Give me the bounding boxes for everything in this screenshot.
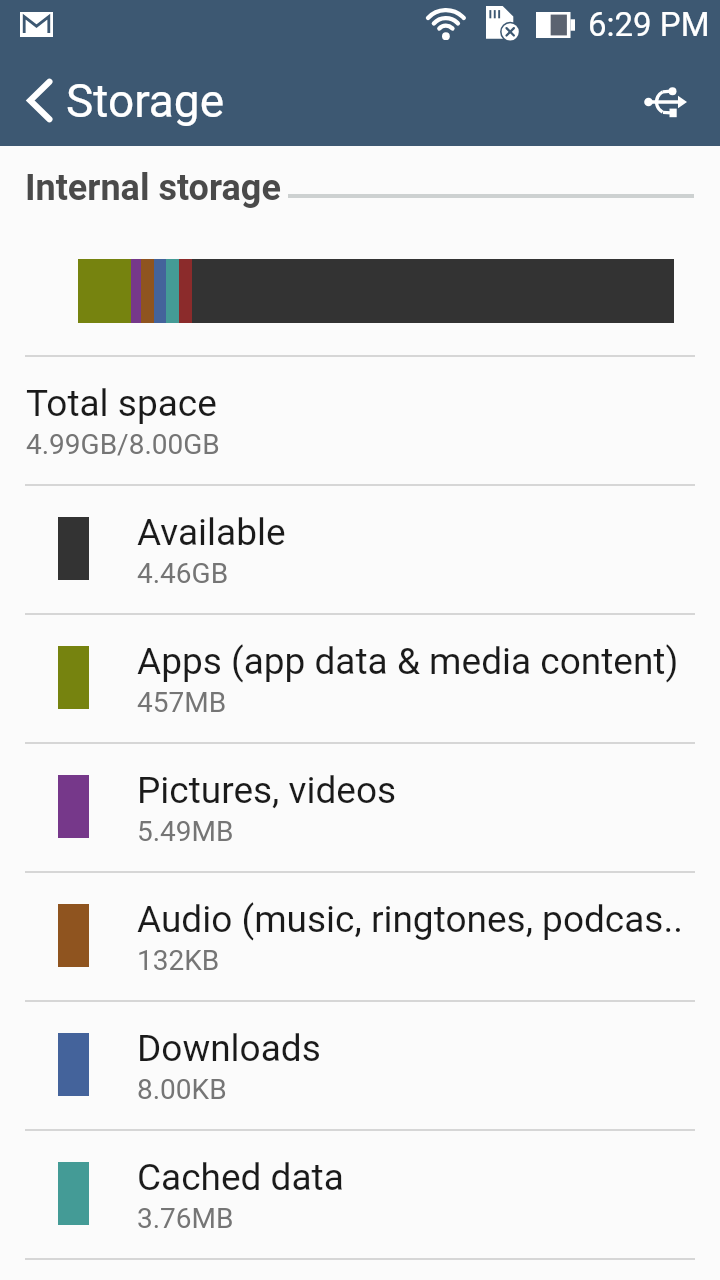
staticText: Apps (app data & media content) <box>137 640 679 683</box>
staticText: 6:29 PM <box>588 5 710 44</box>
staticText: Available <box>137 511 286 554</box>
staticText: 4.46GB <box>137 557 229 590</box>
button[interactable]: Pictures, videos <box>0 742 720 871</box>
staticText: 4.99GB/8.00GB <box>26 428 220 461</box>
staticText: Downloads <box>137 1027 321 1070</box>
button[interactable]: Cached data <box>0 1129 720 1258</box>
button[interactable]: Navigate up <box>7 55 72 146</box>
button[interactable]: Total space <box>0 355 720 484</box>
staticText: Pictures, videos <box>137 769 397 812</box>
staticText: 5.49MB <box>137 815 234 848</box>
staticText: Internal storage <box>25 167 281 209</box>
staticText: 457MB <box>137 686 227 719</box>
button[interactable]: USB connection <box>618 53 710 144</box>
button[interactable]: Available <box>0 484 720 613</box>
staticText: 3.76MB <box>137 1202 234 1235</box>
staticText: 8.00KB <box>137 1073 227 1106</box>
staticText: Audio (music, ringtones, podcas.. <box>137 898 683 941</box>
button[interactable]: Downloads <box>0 1000 720 1129</box>
button[interactable]: Apps (app data & media content) <box>0 613 720 742</box>
staticText: 132KB <box>137 944 220 977</box>
button[interactable]: Audio (music, ringtones, podcas.. <box>0 871 720 1000</box>
staticText: Storage <box>66 74 225 128</box>
staticText: Cached data <box>137 1156 344 1199</box>
staticText: Total space <box>26 382 217 425</box>
